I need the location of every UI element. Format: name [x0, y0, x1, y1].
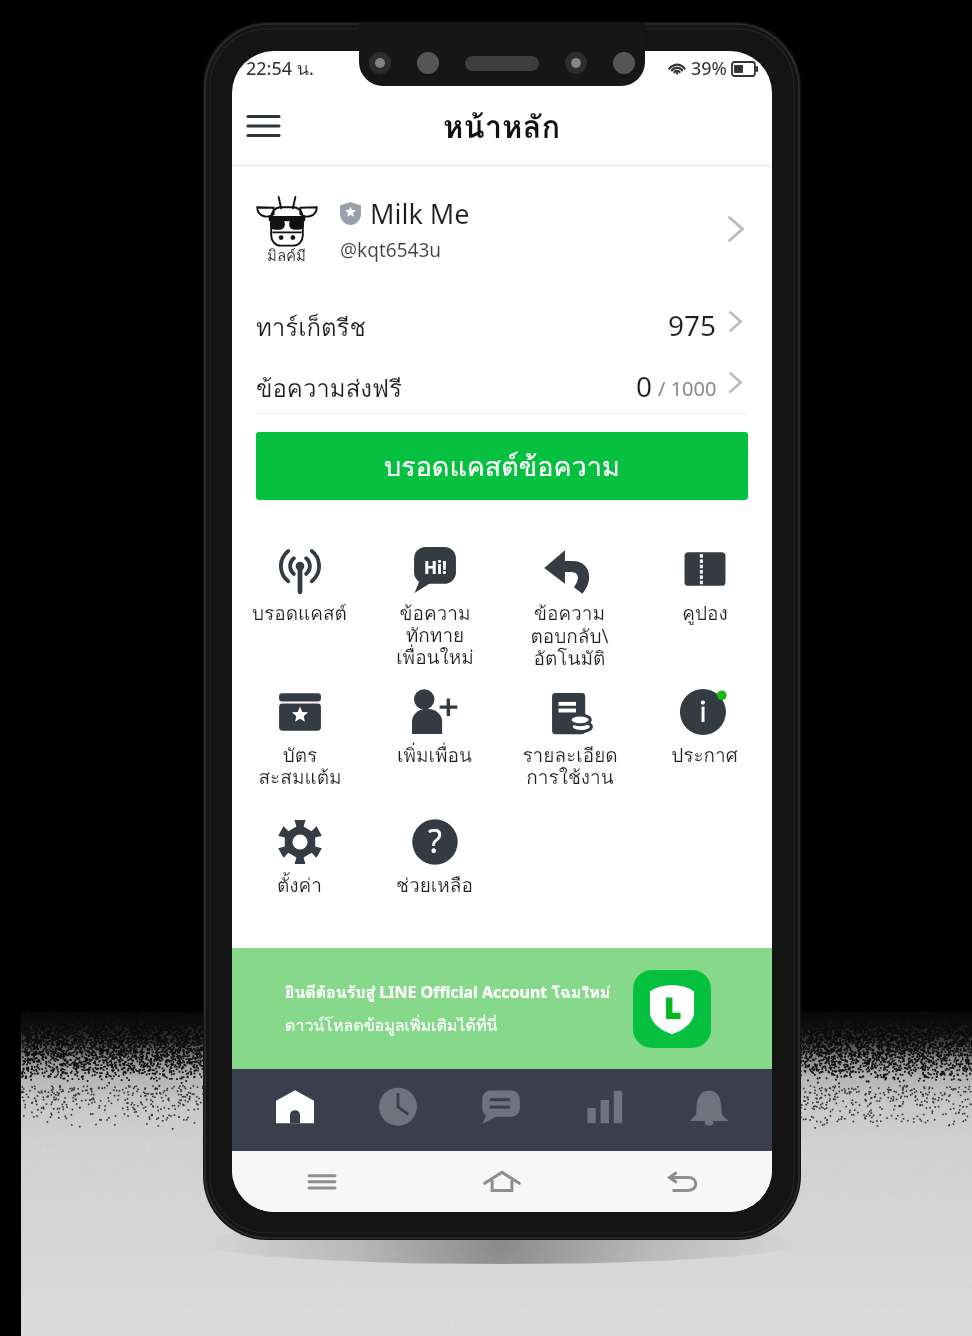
button[interactable]: ตั้งค่า [232, 819, 367, 931]
button[interactable]: Menu [236, 99, 290, 153]
staticText: คูปอง [682, 598, 728, 628]
staticText: ดาวน์โหลดข้อมูลเพิ่มเติมได้ที่นี่ [285, 1013, 498, 1038]
staticText: บัตร สะสมแต้ม [258, 740, 342, 792]
button[interactable]: เพิ่มเพื่อน [367, 689, 502, 819]
button[interactable]: บัตร สะสมแต้ม [232, 689, 367, 819]
button[interactable]: ประกาศ [637, 689, 772, 819]
staticText: ข้อความ ตอบกลับ\ อัตโนมัติ [530, 598, 609, 673]
staticText: รายละเอียด การใช้งาน [522, 740, 618, 792]
staticText: 0 [636, 367, 653, 405]
button[interactable]: ? [367, 819, 502, 931]
staticText: ข้อความ ทักทาย เพื่อนใหม่ [396, 598, 474, 672]
button[interactable]: Back [592, 1151, 772, 1212]
button[interactable]: Hi! [367, 547, 502, 689]
staticText: บรอดแคสต์ [252, 598, 347, 628]
button[interactable]: Statistics [553, 1069, 657, 1151]
staticText: 975 [668, 306, 717, 344]
staticText: 22:54 น. [246, 54, 314, 83]
staticText: Milk Me [370, 195, 470, 232]
button[interactable]: History [346, 1069, 449, 1151]
button[interactable]: Chats [449, 1069, 553, 1151]
button[interactable]: มิลค์มี [232, 166, 772, 291]
button[interactable]: Home [412, 1151, 592, 1212]
staticText: ยินดีต้อนรับสู่ LINE Official Account โฉ… [285, 980, 611, 1005]
staticText: มิลค์มี [267, 244, 307, 268]
button[interactable]: Notifications [657, 1069, 761, 1151]
staticText: บรอดแคสต์ข้อความ [384, 445, 620, 488]
button[interactable]: รายละเอียด การใช้งาน [502, 689, 637, 819]
staticText: Hi! [424, 556, 447, 579]
staticText: ตั้งค่า [277, 870, 322, 900]
staticText: / 1000 [658, 375, 717, 402]
button[interactable]: บรอดแคสต์ข้อความ [256, 432, 748, 500]
button[interactable]: คูปอง [637, 547, 772, 689]
staticText: @kqt6543u [340, 237, 441, 263]
button[interactable]: Recents [232, 1151, 412, 1212]
staticText: ประกาศ [671, 740, 738, 770]
button[interactable]: ยินดีต้อนรับสู่ LINE Official Account โฉ… [232, 948, 772, 1069]
staticText: ทาร์เก็ตรีช [256, 308, 366, 346]
staticText: ช่วยเหลือ [396, 870, 473, 900]
staticText: เพิ่มเพื่อน [397, 740, 472, 770]
button[interactable]: บรอดแคสต์ [232, 547, 367, 689]
button[interactable]: Home [243, 1069, 346, 1151]
staticText: ? [428, 819, 442, 863]
staticText: ข้อความส่งฟรี [256, 369, 402, 407]
button[interactable]: ทาร์เก็ตรีช [232, 291, 772, 352]
button[interactable]: ข้อความส่งฟรี [232, 352, 772, 413]
button[interactable]: ข้อความ ตอบกลับ\ อัตโนมัติ [502, 547, 637, 689]
staticText: 39% [691, 56, 727, 81]
staticText: หน้าหลัก [443, 102, 561, 151]
